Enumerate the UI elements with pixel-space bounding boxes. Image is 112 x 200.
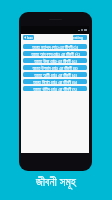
staticText: হয়রত আলী (রাঃ) এর জীবনী (৫) (34, 72, 77, 77)
staticText: হয়রত উমর (রাঃ) এর জীবনী (৩) (34, 58, 77, 63)
staticText: হয়রত উসমান (রাঃ) এর জীবনী (৪) (32, 65, 78, 70)
staticText: জীবনী সমূহ (36, 174, 76, 190)
button[interactable]: হয়রত আলী (রাঃ) এর জীবনী (৫) (23, 72, 87, 77)
button[interactable]: rating app (73, 35, 87, 40)
button[interactable]: হয়রত উসমান (রাঃ) এর জীবনী (৪) (23, 65, 87, 70)
staticText: হয়রত আবু বকর (রাঃ) এর জীবনী (২) (31, 51, 80, 56)
staticText: back (27, 35, 33, 40)
staticText: হয়রত মুহাম্মদ (সাঃ) এর জীবনী (১) (32, 44, 78, 49)
button[interactable]: হয়রত বিলাল (রাঃ) এর জীবনী (৬) (23, 79, 87, 84)
button[interactable]: হয়রত খালিদ (রাঃ) এর জীবনী (৭) (23, 86, 87, 91)
staticText: rating app (73, 35, 87, 40)
button[interactable]: হয়রত উমর (রাঃ) এর জীবনী (৩) (23, 58, 87, 63)
staticText: হয়রত খালিদ (রাঃ) এর জীবনী (৭) (33, 86, 77, 91)
button[interactable]: back (23, 35, 34, 40)
staticText: হয়রত বিলাল (রাঃ) এর জীবনী (৬) (33, 79, 77, 84)
button[interactable]: হয়রত মুহাম্মদ (সাঃ) এর জীবনী (১) (23, 44, 87, 49)
button[interactable]: হয়রত আবু বকর (রাঃ) এর জীবনী (২) (23, 51, 87, 56)
